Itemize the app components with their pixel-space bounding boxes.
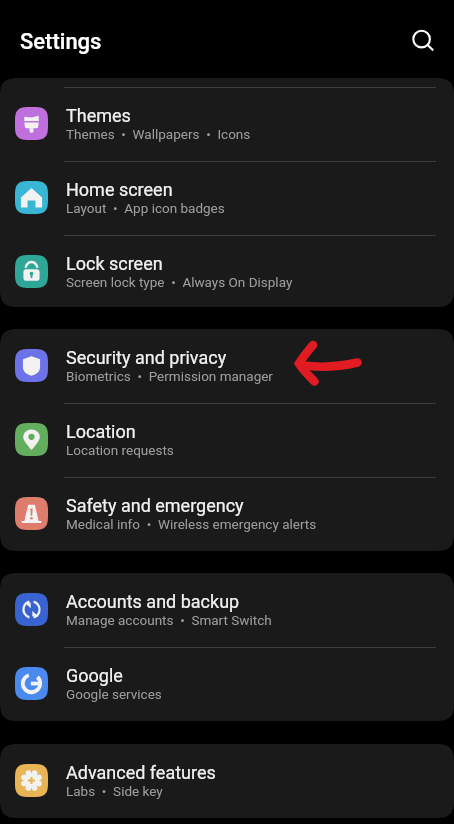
- staticText: Safety and emergency: [66, 495, 244, 516]
- staticText: Biometrics • Permission manager: [66, 368, 273, 384]
- button[interactable]: Display: [0, 78, 454, 87]
- button[interactable]: Location: [0, 403, 454, 477]
- button[interactable]: Google: [0, 647, 454, 721]
- button[interactable]: Safety and emergency: [0, 477, 454, 551]
- staticText: Themes • Wallpapers • Icons: [66, 126, 251, 142]
- staticText: Location requests: [66, 442, 174, 458]
- staticText: Google services: [66, 686, 162, 702]
- staticText: Manage accounts • Smart Switch: [66, 612, 272, 628]
- button[interactable]: Lock screen: [0, 235, 454, 307]
- staticText: Google: [66, 665, 123, 686]
- staticText: Screen lock type • Always On Display: [66, 274, 293, 290]
- button[interactable]: Advanced features: [0, 744, 454, 818]
- button[interactable]: Home screen: [0, 161, 454, 235]
- staticText: Lock screen: [66, 253, 163, 274]
- staticText: Themes: [66, 105, 131, 126]
- staticText: Home screen: [66, 179, 173, 200]
- staticText: Location: [66, 421, 136, 442]
- staticText: Labs • Side key: [66, 783, 163, 799]
- staticText: Medical info • Wireless emergency alerts: [66, 516, 317, 532]
- staticText: Settings: [20, 29, 102, 55]
- staticText: Advanced features: [66, 762, 216, 783]
- button[interactable]: Accounts and backup: [0, 573, 454, 647]
- button[interactable]: Themes: [0, 87, 454, 161]
- staticText: Layout • App icon badges: [66, 200, 225, 216]
- staticText: Accounts and backup: [66, 591, 240, 612]
- staticText: Security and privacy: [66, 347, 227, 368]
- button[interactable]: Search: [398, 20, 442, 64]
- button[interactable]: Security and privacy: [0, 329, 454, 403]
